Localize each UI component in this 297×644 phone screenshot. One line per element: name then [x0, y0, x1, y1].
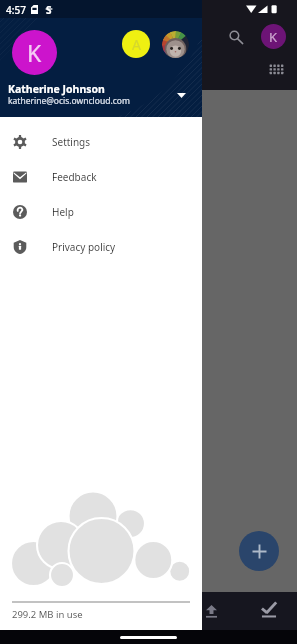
button[interactable]: Available offline	[258, 598, 280, 620]
button[interactable]: Feedback	[0, 159, 202, 194]
staticText: A	[132, 35, 141, 54]
button[interactable]: Switch account	[172, 86, 190, 104]
staticText: Katherine Johnson	[8, 82, 105, 96]
button[interactable]: Help	[0, 194, 202, 229]
staticText: 4:57	[6, 3, 26, 17]
staticText: katherine@ocis.owncloud.com	[8, 95, 130, 107]
staticText: K	[269, 28, 278, 46]
button[interactable]: Settings	[0, 124, 202, 159]
button[interactable]: Account photo	[162, 31, 189, 58]
staticText: Help	[52, 205, 74, 219]
staticText: Feedback	[52, 170, 97, 184]
staticText: K	[27, 37, 42, 68]
button[interactable]: Search	[226, 26, 246, 46]
staticText: 299.2 MB in use	[12, 608, 83, 621]
staticText: Settings	[52, 135, 91, 149]
button[interactable]: Katherine Johnson avatar	[12, 30, 57, 75]
staticText: S	[46, 3, 52, 15]
button[interactable]: Account A	[122, 30, 150, 58]
button[interactable]: Privacy policy	[0, 229, 202, 264]
button[interactable]: Account	[261, 24, 286, 49]
button[interactable]: Uploads	[200, 600, 222, 622]
staticText: Privacy policy	[52, 240, 116, 254]
button[interactable]: Add content	[239, 531, 279, 571]
button[interactable]: Switch to grid view	[269, 64, 285, 76]
